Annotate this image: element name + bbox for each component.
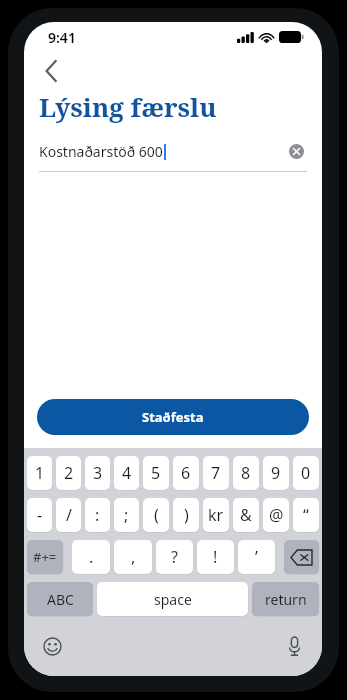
button[interactable]: / (56, 498, 81, 532)
button[interactable]: Dictation (280, 632, 308, 660)
button[interactable]: ? (156, 540, 193, 574)
button[interactable]: & (233, 498, 259, 532)
staticText: ? (171, 546, 178, 568)
staticText: 7 (211, 462, 221, 484)
button[interactable]: Clear text (285, 140, 307, 162)
staticText: Staðfesta (142, 408, 204, 426)
staticText: ( (154, 504, 159, 526)
staticText: #+= (33, 548, 57, 566)
staticText: 4 (122, 462, 132, 484)
staticText: 3 (93, 462, 103, 484)
staticText: ) (184, 504, 189, 526)
staticText: : (95, 504, 100, 526)
staticText: 9:41 (48, 28, 76, 47)
staticText: - (37, 504, 43, 526)
button[interactable]: space (97, 582, 248, 616)
staticText: 2 (64, 462, 74, 484)
button[interactable]: ) (173, 498, 199, 532)
button[interactable]: ’ (238, 540, 275, 574)
button[interactable]: 5 (143, 456, 169, 490)
button[interactable]: 9 (263, 456, 289, 490)
button[interactable]: 3 (85, 456, 110, 490)
staticText: 6 (181, 462, 191, 484)
staticText: ! (213, 546, 218, 568)
staticText: 9 (271, 462, 281, 484)
staticText: , (131, 546, 136, 568)
staticText: 1 (35, 462, 45, 484)
button[interactable]: 4 (114, 456, 139, 490)
button[interactable]: , (114, 540, 152, 574)
staticText: kr (208, 504, 224, 526)
staticText: “ (303, 504, 309, 526)
button[interactable]: ! (197, 540, 234, 574)
button[interactable]: - (27, 498, 52, 532)
staticText: return (265, 590, 307, 609)
button[interactable]: kr (203, 498, 229, 532)
button[interactable]: Back (34, 54, 68, 88)
button[interactable]: 0 (293, 456, 319, 490)
staticText: Kostnaðarstöð 600 (39, 142, 163, 161)
button[interactable]: Backspace (284, 540, 319, 574)
staticText: 5 (151, 462, 161, 484)
button[interactable]: Emoji (38, 632, 66, 660)
button[interactable]: 8 (233, 456, 259, 490)
button[interactable]: : (85, 498, 110, 532)
staticText: & (240, 504, 252, 526)
button[interactable]: #+= (27, 540, 63, 574)
button[interactable]: . (72, 540, 110, 574)
button[interactable]: ; (114, 498, 139, 532)
staticText: space (154, 590, 192, 609)
button[interactable]: 7 (203, 456, 229, 490)
button[interactable]: 6 (173, 456, 199, 490)
staticText: ; (124, 504, 129, 526)
button[interactable]: Staðfesta (37, 399, 309, 435)
button[interactable]: 2 (56, 456, 81, 490)
staticText: ’ (255, 546, 258, 568)
button[interactable]: “ (293, 498, 319, 532)
staticText: 8 (241, 462, 251, 484)
staticText: ABC (47, 590, 74, 609)
staticText: Lýsing færslu (39, 89, 217, 124)
staticText: 0 (301, 462, 311, 484)
button[interactable]: @ (263, 498, 289, 532)
button[interactable]: 1 (27, 456, 52, 490)
staticText: @ (269, 504, 284, 526)
staticText: / (66, 504, 72, 526)
button[interactable]: ABC (27, 582, 93, 616)
button[interactable]: ( (143, 498, 169, 532)
button[interactable]: return (252, 582, 319, 616)
staticText: . (89, 546, 94, 568)
